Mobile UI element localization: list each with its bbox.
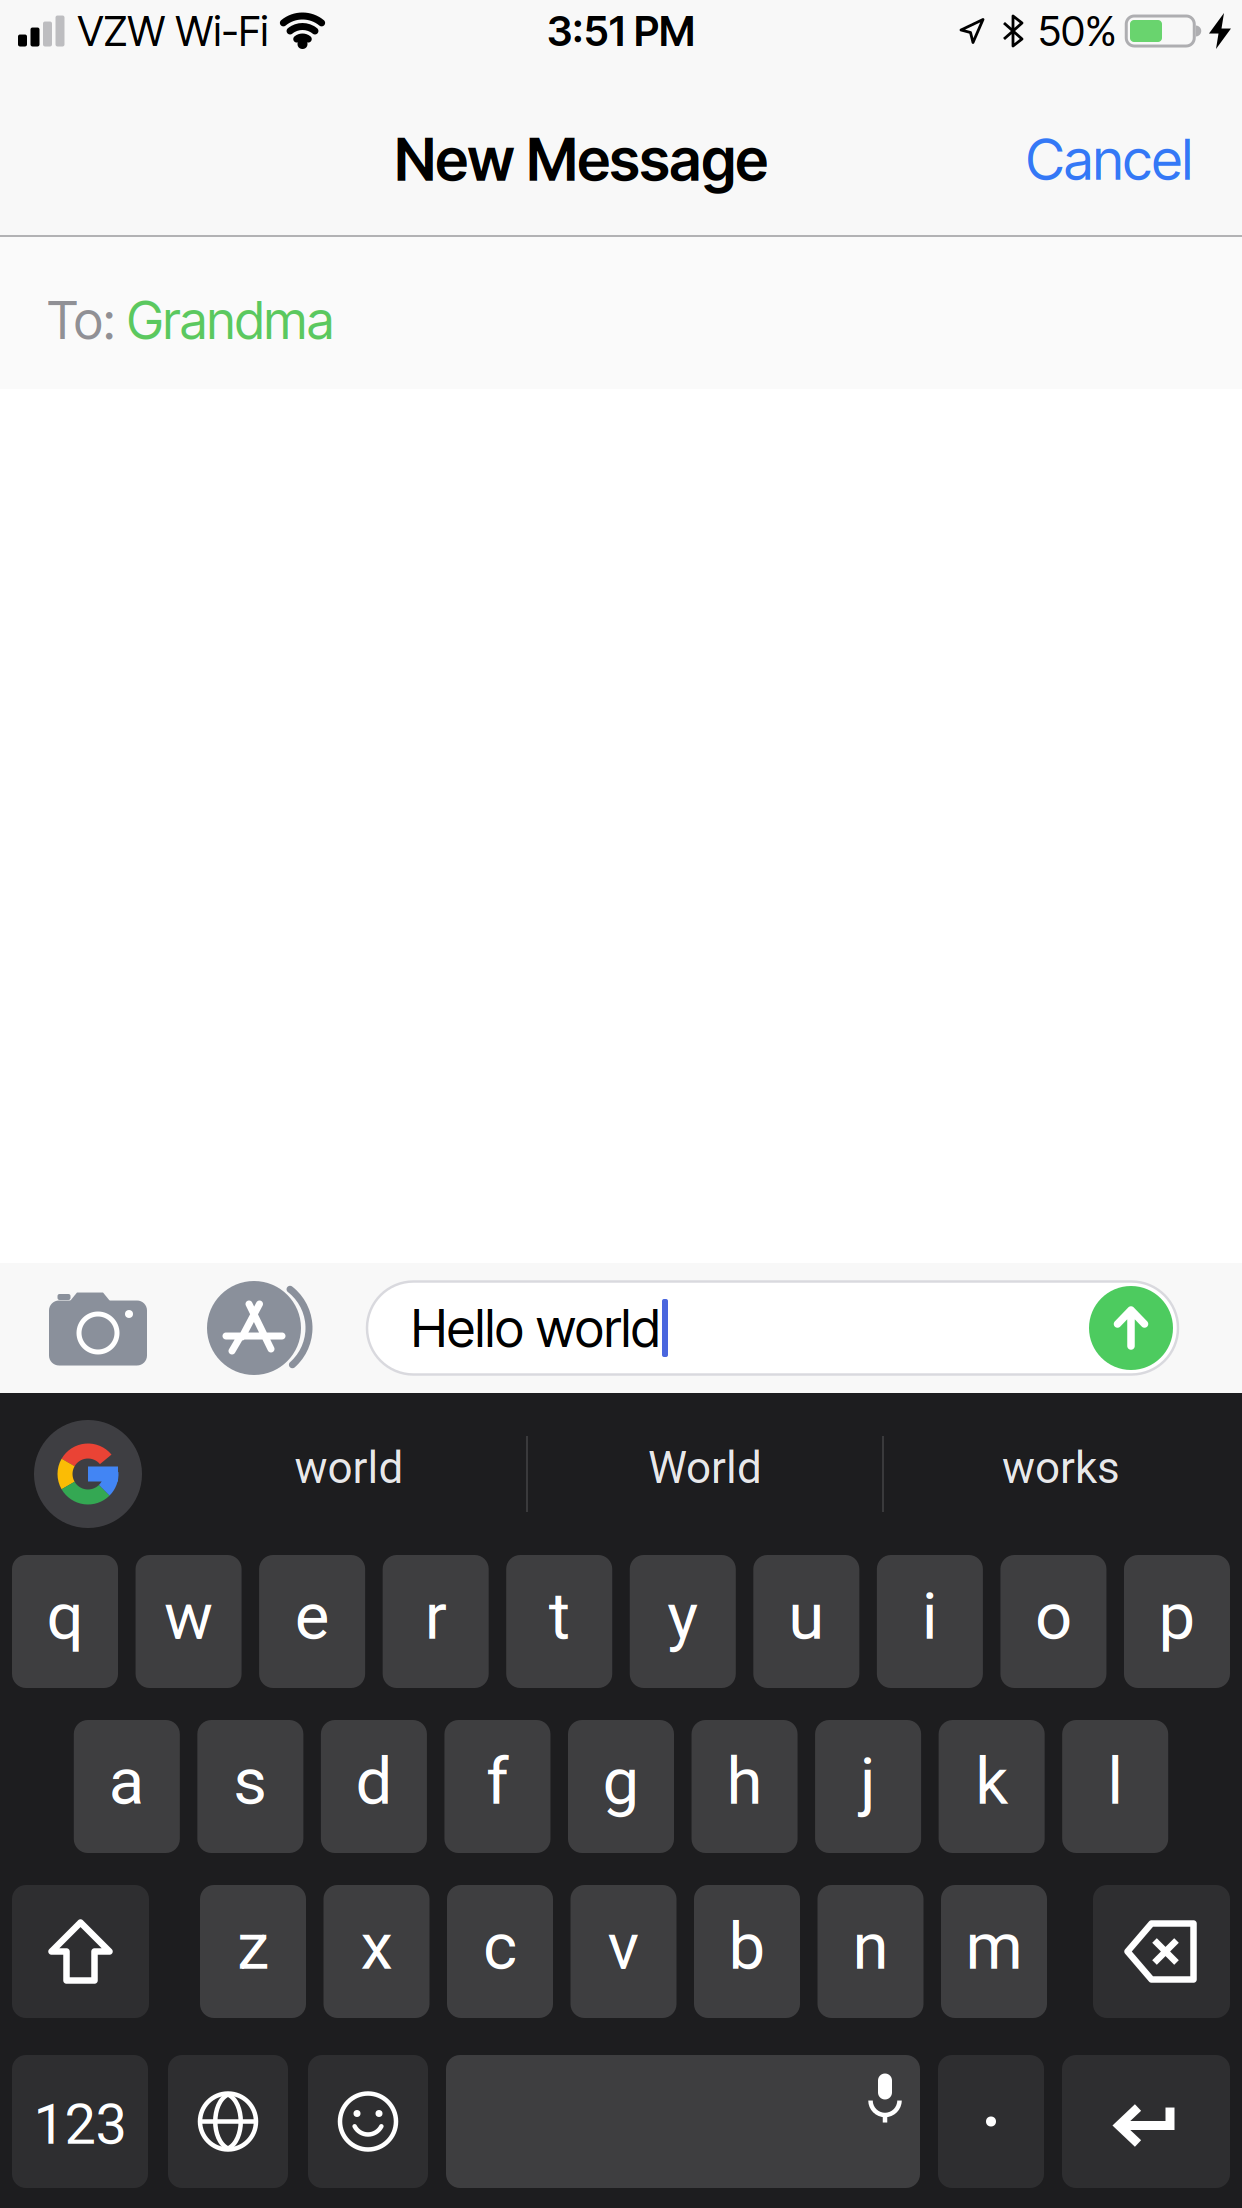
staticText: d <box>355 1743 392 1820</box>
button[interactable]: Cancel <box>1026 126 1193 193</box>
button[interactable] <box>1093 1885 1230 2018</box>
button[interactable]: h <box>691 1720 797 1853</box>
staticText: q <box>46 1578 83 1655</box>
button[interactable]: To: <box>0 237 1242 389</box>
staticText: Hello world <box>411 1296 660 1359</box>
staticText: a <box>109 1743 145 1820</box>
button[interactable] <box>207 1281 315 1375</box>
staticText: h <box>726 1743 762 1820</box>
button[interactable]: r <box>383 1555 489 1688</box>
staticText: f <box>486 1743 509 1820</box>
button[interactable]: w <box>136 1555 242 1688</box>
button[interactable]: u <box>753 1555 859 1688</box>
button[interactable] <box>49 1290 147 1366</box>
button[interactable]: World <box>528 1398 882 1550</box>
button[interactable]: n <box>817 1885 923 2018</box>
staticText: b <box>728 1908 765 1985</box>
staticText: v <box>607 1908 639 1985</box>
button[interactable] <box>938 2055 1044 2188</box>
staticText: c <box>483 1908 517 1985</box>
button[interactable]: q <box>12 1555 118 1688</box>
button[interactable]: v <box>570 1885 676 2018</box>
button[interactable]: p <box>1124 1555 1230 1688</box>
button[interactable]: a <box>74 1720 180 1853</box>
staticText: New Message <box>394 124 767 195</box>
staticText: n <box>852 1908 888 1985</box>
button[interactable]: o <box>1000 1555 1106 1688</box>
button[interactable]: 123 <box>12 2055 148 2188</box>
button[interactable] <box>308 2055 428 2188</box>
button[interactable]: k <box>939 1720 1045 1853</box>
button[interactable] <box>34 1420 142 1528</box>
button[interactable]: f <box>444 1720 550 1853</box>
staticText: x <box>360 1908 392 1985</box>
button[interactable]: works <box>884 1398 1238 1550</box>
staticText: o <box>1035 1578 1072 1655</box>
button[interactable] <box>168 2055 288 2188</box>
button[interactable] <box>1062 2055 1230 2188</box>
staticText: 3:51 PM <box>547 6 695 56</box>
button[interactable]: b <box>694 1885 800 2018</box>
staticText: l <box>1107 1743 1123 1820</box>
button[interactable] <box>1089 1286 1173 1370</box>
staticText: World <box>648 1442 762 1494</box>
button[interactable]: g <box>568 1720 674 1853</box>
button[interactable]: i <box>877 1555 983 1688</box>
staticText: s <box>233 1743 267 1820</box>
staticText: k <box>975 1743 1008 1820</box>
staticText: y <box>667 1578 698 1655</box>
button[interactable]: m <box>941 1885 1047 2018</box>
staticText: 50% <box>1038 6 1117 56</box>
button[interactable]: l <box>1062 1720 1168 1853</box>
staticText: w <box>164 1578 213 1655</box>
staticText: To: <box>47 288 127 351</box>
staticText: Grandma <box>127 288 334 351</box>
button[interactable] <box>446 2055 920 2188</box>
button[interactable]: j <box>815 1720 921 1853</box>
staticText: r <box>425 1578 447 1655</box>
staticText: Cancel <box>1026 126 1193 193</box>
button[interactable]: s <box>197 1720 303 1853</box>
staticText: i <box>922 1578 938 1655</box>
staticText: z <box>237 1908 269 1985</box>
button[interactable]: x <box>323 1885 429 2018</box>
staticText: 123 <box>33 2092 126 2157</box>
staticText: g <box>602 1743 639 1820</box>
staticText: e <box>295 1578 330 1655</box>
button[interactable]: y <box>630 1555 736 1688</box>
staticText: works <box>1002 1442 1120 1494</box>
button[interactable]: t <box>506 1555 612 1688</box>
staticText: p <box>1158 1578 1195 1655</box>
button[interactable] <box>12 1885 149 2018</box>
staticText: u <box>788 1578 824 1655</box>
staticText: m <box>965 1908 1022 1985</box>
button[interactable]: c <box>447 1885 553 2018</box>
staticText: t <box>549 1578 570 1655</box>
staticText: world <box>294 1442 403 1494</box>
staticText: VZW Wi-Fi <box>77 6 268 56</box>
button[interactable]: d <box>321 1720 427 1853</box>
staticText: j <box>860 1743 876 1820</box>
button[interactable]: e <box>259 1555 365 1688</box>
button[interactable]: z <box>200 1885 306 2018</box>
button[interactable]: world <box>172 1398 526 1550</box>
